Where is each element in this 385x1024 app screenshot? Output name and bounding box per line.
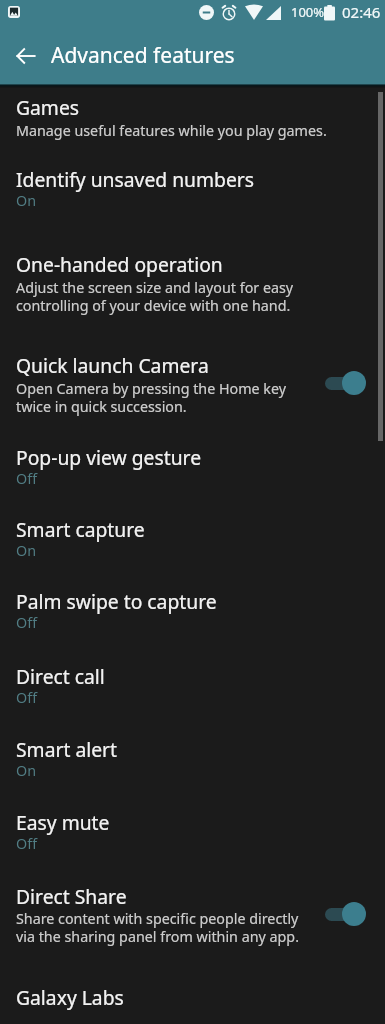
staticText: Pop-up view gesture bbox=[16, 444, 202, 470]
staticText: Easy mute bbox=[16, 809, 110, 835]
staticText: Adjust the screen size and layout for ea… bbox=[16, 278, 294, 297]
staticText: Smart capture bbox=[16, 516, 145, 542]
button[interactable] bbox=[0, 158, 385, 222]
button[interactable]: Navigate up bbox=[5, 35, 46, 76]
staticText: controlling of your device with one hand… bbox=[16, 296, 291, 315]
staticText: Palm swipe to capture bbox=[16, 588, 217, 614]
staticText: 02:46 bbox=[342, 2, 381, 22]
staticText: Manage useful features while you play ga… bbox=[16, 121, 327, 140]
staticText: 100% bbox=[291, 3, 325, 21]
staticText: On bbox=[16, 191, 37, 210]
staticText: One-handed operation bbox=[16, 251, 223, 277]
button[interactable] bbox=[0, 874, 385, 958]
staticText: Games bbox=[16, 94, 80, 120]
staticText: Off bbox=[16, 834, 38, 853]
staticText: Off bbox=[16, 613, 38, 632]
button[interactable] bbox=[0, 340, 385, 424]
staticText: Direct Share bbox=[16, 883, 127, 909]
button[interactable] bbox=[0, 434, 385, 498]
staticText: Advanced features bbox=[51, 41, 235, 70]
button[interactable] bbox=[0, 654, 385, 718]
button[interactable] bbox=[0, 968, 385, 1024]
staticText: On bbox=[16, 541, 37, 560]
staticText: Off bbox=[16, 469, 38, 488]
staticText: Identify unsaved numbers bbox=[16, 166, 255, 192]
button[interactable] bbox=[0, 240, 385, 330]
staticText: via the sharing panel from within any ap… bbox=[16, 927, 299, 946]
staticText: Share content with specific people direc… bbox=[16, 909, 299, 928]
button[interactable]: Toggle on bbox=[323, 896, 371, 928]
staticText: Quick launch Camera bbox=[16, 352, 209, 378]
button[interactable] bbox=[0, 580, 385, 644]
staticText: twice in quick succession. bbox=[16, 397, 187, 416]
button[interactable] bbox=[0, 726, 385, 790]
button[interactable]: Toggle on bbox=[323, 365, 371, 397]
staticText: Off bbox=[16, 688, 38, 707]
staticText: On bbox=[16, 761, 37, 780]
button[interactable] bbox=[0, 800, 385, 864]
button[interactable] bbox=[0, 86, 385, 158]
button[interactable] bbox=[0, 506, 385, 570]
staticText: Direct call bbox=[16, 663, 105, 689]
staticText: Galaxy Labs bbox=[16, 984, 124, 1010]
staticText: Smart alert bbox=[16, 736, 118, 762]
staticText: Open Camera by pressing the Home key bbox=[16, 379, 287, 398]
